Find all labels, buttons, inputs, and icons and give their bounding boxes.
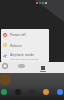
button[interactable]: Power off xyxy=(1,29,49,40)
staticText: Power off xyxy=(10,32,26,37)
button[interactable]: Search xyxy=(2,63,8,69)
staticText: Airplane mode xyxy=(10,52,35,57)
staticText: Reboot xyxy=(10,43,22,48)
button[interactable]: Chrome xyxy=(57,89,63,95)
button[interactable]: Reboot xyxy=(1,40,49,50)
button[interactable]: Airplane mode xyxy=(1,50,49,62)
button[interactable]: Gallery xyxy=(43,89,49,95)
button[interactable]: Messages xyxy=(15,89,21,95)
staticText: Turn off Wi‑Fi and mobile xyxy=(10,57,39,60)
button[interactable]: Phone xyxy=(1,89,7,95)
